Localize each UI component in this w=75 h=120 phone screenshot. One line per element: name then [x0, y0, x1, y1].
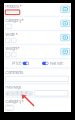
button[interactable]: Select — [5, 10, 20, 14]
staticText: * — [22, 99, 24, 104]
staticText: Comments — [5, 70, 23, 75]
button[interactable]: Select — [5, 52, 10, 57]
staticText: Weight — [5, 46, 17, 51]
button[interactable]: Select — [34, 91, 68, 96]
button[interactable]: Select — [5, 76, 69, 81]
button[interactable]: Toggle — [23, 62, 29, 65]
staticText: * — [22, 18, 24, 23]
staticText: * — [20, 4, 22, 9]
button[interactable]: Add image — [61, 20, 70, 27]
button[interactable]: 2 — [19, 91, 24, 96]
button[interactable]: Add image — [61, 6, 70, 12]
staticText: 3 — [25, 91, 27, 95]
staticText: 2 — [20, 91, 22, 95]
staticText: Products — [5, 4, 19, 9]
button[interactable]: Add image — [61, 48, 70, 55]
button[interactable]: Toggle — [42, 62, 48, 65]
staticText: ‹ — [12, 91, 13, 95]
button[interactable]: 3 — [24, 91, 28, 96]
button[interactable]: « — [5, 91, 10, 96]
staticText: Nat rule — [50, 61, 63, 66]
button[interactable]: Add image — [61, 34, 70, 41]
staticText: Category — [5, 99, 21, 104]
button[interactable]: Select — [5, 105, 14, 110]
button[interactable]: › — [28, 91, 33, 96]
button[interactable]: Select — [11, 38, 16, 43]
staticText: Select — [6, 104, 12, 111]
staticText: Select — [6, 10, 16, 14]
button[interactable]: Select — [11, 52, 16, 57]
staticText: Price — [12, 61, 21, 66]
staticText: Width — [5, 32, 15, 37]
button[interactable]: ‹ — [10, 91, 14, 96]
staticText: Category — [5, 18, 21, 23]
staticText: « — [7, 91, 9, 95]
staticText: Hashtags — [5, 85, 21, 89]
staticText: * — [16, 32, 18, 37]
button[interactable]: Select — [5, 24, 12, 29]
staticText: 1 — [16, 91, 17, 95]
staticText: › — [30, 91, 31, 95]
staticText: * — [18, 46, 20, 51]
button[interactable]: 1 — [14, 91, 19, 96]
button[interactable]: Select — [5, 38, 10, 43]
